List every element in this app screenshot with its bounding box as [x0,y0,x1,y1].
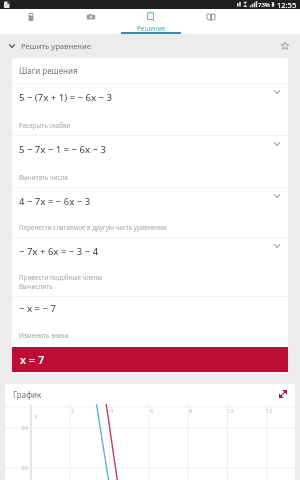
staticText: 6 [150,407,154,414]
staticText: График [13,389,42,400]
button[interactable]: Solution [121,9,181,34]
button[interactable]: Camera [61,9,121,34]
staticText: 8 [189,407,193,414]
staticText: 12 [266,407,273,414]
staticText: 12:55 [277,0,297,9]
button[interactable]: Calculator [1,9,61,34]
staticText: − x = − 7 [19,302,56,315]
staticText: 2 [71,407,75,414]
button[interactable]: − x = − 7 [12,297,288,372]
staticText: -24 [20,424,29,431]
button[interactable]: Решить уравнение [0,34,300,58]
button[interactable]: 5 − 7x − 1 = − 6x − 3 [12,136,288,187]
staticText: Решить уравнение [21,41,92,51]
staticText: y [35,412,38,419]
button[interactable]: Book [181,9,241,34]
staticText: Раскрыть скобки [19,121,71,130]
staticText: x = 7 [20,352,45,367]
staticText: Шаги решения [19,65,78,76]
staticText: − 7x + 6x = − 3 − 4 [19,245,99,258]
staticText: -26 [20,464,29,471]
staticText: Перенести слагаемое в другую часть уравн… [19,223,167,232]
staticText: Вычислить [19,282,53,291]
button[interactable]: Add to favourites [276,37,294,55]
staticText: 4 − 7x = − 6x − 3 [19,195,91,208]
staticText: Привести подобные члены [19,273,103,282]
button[interactable]: − 7x + 6x = − 3 − 4 [12,238,288,296]
staticText: 4 [110,407,114,414]
staticText: 5 − (7x + 1) = − 6x − 3 [19,91,112,104]
staticText: 10 [227,407,234,414]
button[interactable]: 5 − (7x + 1) = − 6x − 3 [12,84,288,135]
button[interactable]: Expand graph [276,387,290,401]
staticText: Решение [137,24,166,33]
staticText: 5 − 7x − 1 = − 6x − 3 [19,143,107,156]
staticText: Вычитать числа [19,173,68,182]
button[interactable]: 4 − 7x = − 6x − 3 [12,188,288,237]
staticText: 73% [258,1,270,9]
staticText: Изменить знаки [19,331,69,340]
